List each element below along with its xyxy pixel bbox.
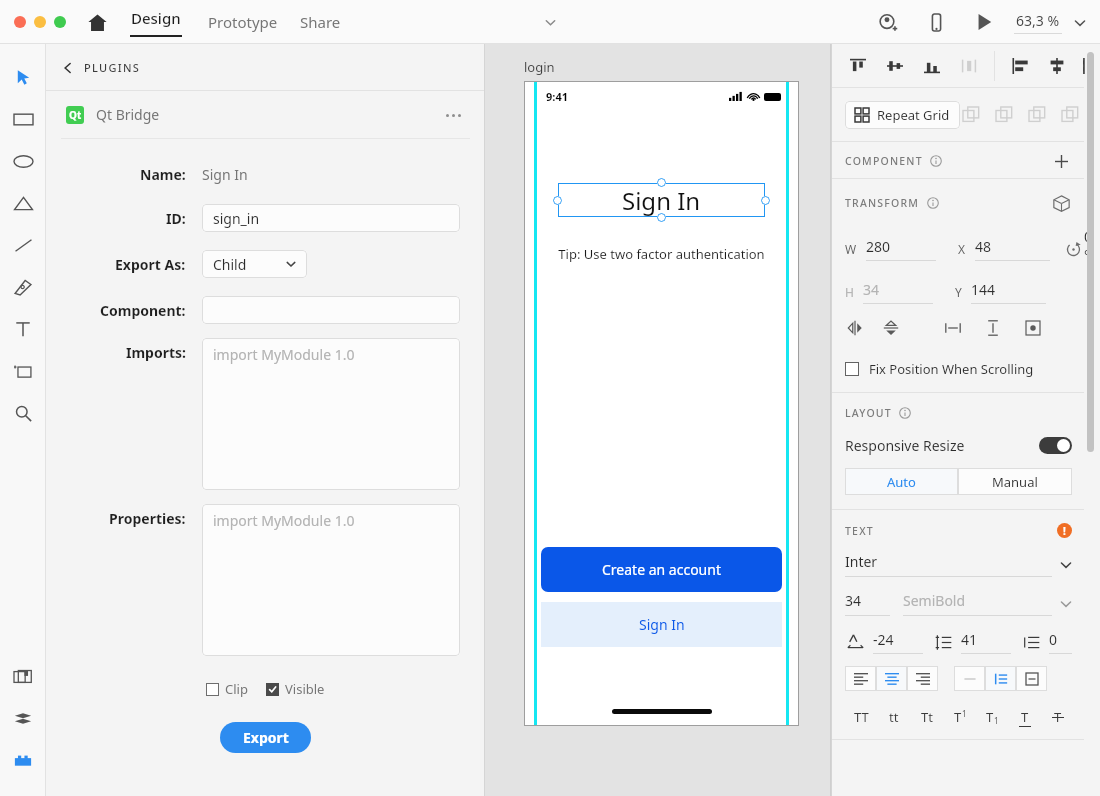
button[interactable]: Superscript (948, 705, 972, 729)
button[interactable]: Uppercase (849, 705, 873, 729)
button[interactable]: Fix Position When Scrolling (831, 352, 1084, 386)
button[interactable]: Auto height (985, 666, 1016, 691)
button[interactable]: 144 (971, 280, 1046, 304)
staticText: Export As: (115, 255, 186, 274)
button[interactable]: Add component (1050, 150, 1072, 172)
button[interactable]: Align left (845, 666, 876, 691)
button[interactable]: Zoom (0, 392, 46, 434)
button[interactable]: Visible (266, 680, 325, 698)
button[interactable]: Qt (46, 91, 485, 138)
button[interactable]: Fit to content (1023, 318, 1043, 338)
button[interactable]: Exclude overlap (1059, 104, 1081, 126)
button[interactable]: Subscript (980, 705, 1004, 729)
button[interactable]: Subtract (993, 104, 1015, 126)
button[interactable]: Titlecase (915, 705, 939, 729)
button[interactable]: Assets (0, 656, 46, 698)
button[interactable]: Rectangle (0, 98, 46, 140)
staticText: 144 (971, 280, 996, 299)
button[interactable]: Distribute horizontally (943, 318, 963, 338)
staticText: Qt Bridge (96, 105, 160, 124)
button[interactable]: Strikethrough (1046, 705, 1070, 729)
button[interactable]: Align top (847, 55, 869, 77)
button[interactable]: Text (0, 308, 46, 350)
button[interactable]: Single line (954, 666, 985, 691)
button[interactable]: Inter (845, 552, 1072, 577)
staticText: TRANSFORM (845, 196, 920, 210)
button[interactable]: Export (220, 722, 311, 753)
button[interactable]: Underline (1013, 705, 1037, 729)
button[interactable]: Line (0, 224, 46, 266)
button[interactable]: Distribute vertically (983, 318, 1003, 338)
staticText: sign_in (213, 209, 260, 228)
button[interactable]: Plugins (0, 740, 46, 782)
staticText: Design (131, 8, 181, 28)
button[interactable]: Align horizontal center (1046, 55, 1068, 77)
button[interactable]: Align vertical center (884, 55, 906, 77)
button[interactable]: Add (960, 104, 982, 126)
button[interactable]: Sign In (558, 183, 765, 217)
button[interactable]: Layers (0, 698, 46, 740)
button[interactable]: Align bottom (921, 55, 943, 77)
button[interactable]: sign_in (202, 204, 460, 232)
button[interactable]: Rotate (1064, 240, 1082, 258)
staticText: Export (243, 728, 289, 747)
staticText: 48 (975, 237, 992, 256)
staticText: 1 (994, 715, 999, 726)
button[interactable]: Flip vertical (881, 318, 901, 338)
button[interactable]: Align center (876, 666, 907, 691)
button[interactable]: 3D transform (1050, 192, 1072, 214)
button[interactable]: Invite (874, 8, 902, 36)
button[interactable]: PLUGINS (46, 44, 485, 91)
button[interactable]: Pen (0, 266, 46, 308)
button[interactable]: Design (126, 8, 186, 37)
button[interactable]: Create an account (541, 547, 782, 592)
button[interactable]: Letter spacing (845, 632, 865, 652)
button[interactable]: Sign In (541, 602, 782, 647)
button[interactable]: Maximize (54, 16, 66, 28)
button[interactable]: Manual (958, 468, 1072, 495)
button[interactable]: Lowercase (882, 705, 906, 729)
button[interactable]: Clip (206, 680, 248, 698)
button[interactable]: Close (14, 16, 26, 28)
button[interactable]: Triangle (0, 182, 46, 224)
button[interactable]: Intersect (1026, 104, 1048, 126)
button[interactable]: Repeat Grid (845, 101, 960, 129)
button[interactable]: 34 (863, 280, 933, 304)
button[interactable]: Distribute horizontal (958, 55, 980, 77)
button[interactable]: Share (300, 12, 341, 32)
staticText: Responsive Resize (845, 436, 965, 455)
staticText: -24 (873, 630, 894, 649)
staticText: Manual (992, 473, 1038, 491)
button[interactable]: 280 (866, 237, 936, 261)
button[interactable]: Fixed size (1016, 666, 1047, 691)
button[interactable]: 63,3 % (1014, 11, 1086, 34)
staticText: Sign In (622, 184, 701, 217)
button[interactable]: Align left (1009, 55, 1031, 77)
button[interactable]: Responsive Resize (845, 436, 1072, 455)
button[interactable]: Auto (845, 468, 958, 495)
button[interactable]: Home (82, 7, 112, 37)
button[interactable]: Artboard (0, 350, 46, 392)
button[interactable]: Prototype (208, 12, 278, 32)
button[interactable]: Line spacing (933, 632, 953, 652)
staticText: TT (854, 708, 869, 726)
button[interactable]: More options (441, 103, 465, 127)
staticText: Properties: (109, 509, 186, 528)
button[interactable]: import MyModule 1.0 (202, 504, 460, 656)
button[interactable] (202, 296, 460, 324)
button[interactable]: import MyModule 1.0 (202, 338, 460, 490)
button[interactable]: Play (970, 8, 998, 36)
button[interactable]: 48 (975, 237, 1050, 261)
button[interactable]: Select (0, 56, 46, 98)
button[interactable]: Align right (1083, 55, 1084, 77)
button[interactable]: Minimize (34, 16, 46, 28)
button[interactable]: Device preview (922, 8, 950, 36)
button[interactable]: Ellipse (0, 140, 46, 182)
button[interactable]: Child (202, 250, 307, 278)
staticText: Tip: Use two factor authentication (524, 245, 799, 263)
button[interactable]: Paragraph spacing (1021, 632, 1041, 652)
staticText: Name: (140, 165, 186, 184)
staticText: COMPONENT (845, 154, 923, 168)
button[interactable]: Align right (907, 666, 938, 691)
button[interactable]: Flip horizontal (845, 318, 865, 338)
